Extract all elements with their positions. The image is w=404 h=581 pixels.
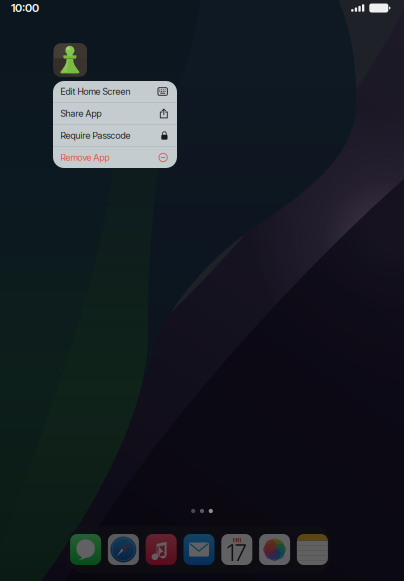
staticText: 17 <box>227 539 247 567</box>
staticText: Share App <box>61 108 102 119</box>
staticText: Remove App <box>61 152 110 163</box>
staticText: Edit Home Screen <box>61 86 131 97</box>
button[interactable]: Chess <box>53 43 87 77</box>
button[interactable]: Edit Home Screen <box>53 81 177 102</box>
button[interactable]: Safari <box>108 534 139 565</box>
button[interactable]: Notes <box>297 534 328 565</box>
staticText: FRI <box>233 537 241 544</box>
button[interactable]: Require Passcode <box>53 125 177 146</box>
button[interactable]: Remove App <box>53 147 177 168</box>
staticText: Require Passcode <box>61 130 131 141</box>
button[interactable]: Calendar <box>221 534 252 565</box>
button[interactable]: Messages <box>70 534 101 565</box>
button[interactable]: Mail <box>183 534 214 565</box>
button[interactable]: Share App <box>53 103 177 124</box>
button[interactable]: Photos <box>259 534 290 565</box>
button[interactable]: Music <box>146 534 177 565</box>
staticText: 10:00 <box>11 1 39 15</box>
